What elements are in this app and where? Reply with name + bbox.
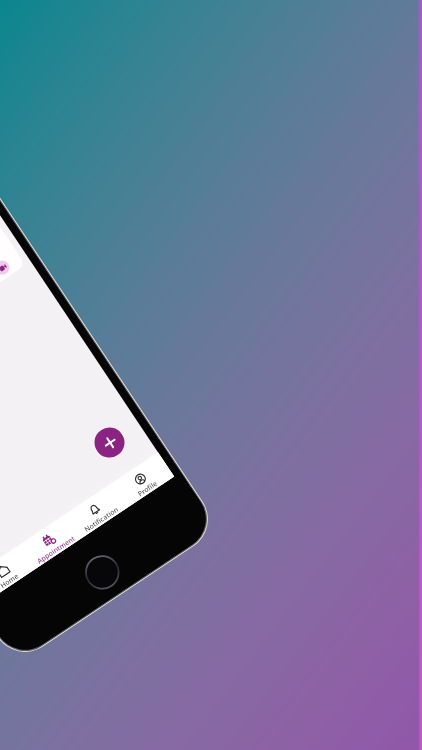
button[interactable]: New appointment [89, 422, 130, 463]
staticText: Notification [83, 505, 120, 534]
button[interactable]: Appointment [19, 514, 81, 569]
staticText: Appointment [35, 534, 77, 566]
button[interactable]: Notification [65, 484, 127, 538]
button[interactable]: Home [0, 545, 35, 600]
staticText: Home [0, 571, 20, 590]
staticText: Profile [136, 479, 159, 499]
button[interactable]: Video call [0, 258, 12, 277]
button[interactable]: Dr. Sarah Mitchell [0, 202, 26, 383]
button[interactable]: Profile [111, 453, 172, 508]
